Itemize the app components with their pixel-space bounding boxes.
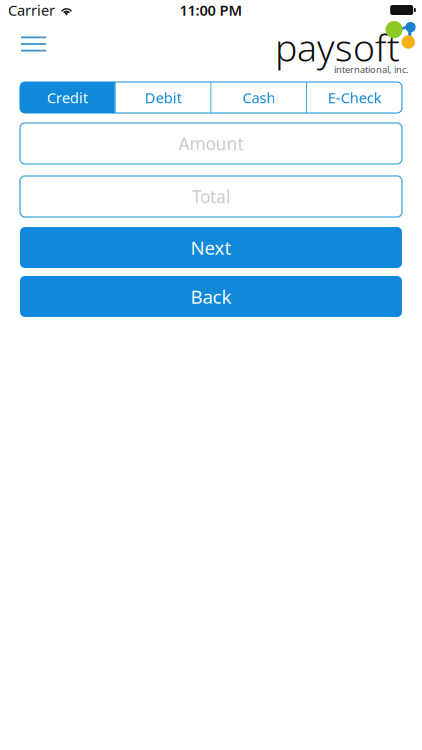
staticText: Total xyxy=(192,185,230,208)
button[interactable]: Back xyxy=(0,276,422,317)
button[interactable]: Total xyxy=(0,176,422,217)
button[interactable]: Menu xyxy=(11,22,56,66)
staticText: paysoft xyxy=(275,22,400,72)
staticText: Next xyxy=(190,235,231,260)
button[interactable]: Debit xyxy=(116,82,211,113)
button[interactable]: Cash xyxy=(211,82,306,113)
staticText: Carrier xyxy=(8,0,55,20)
staticText: 11:00 PM xyxy=(179,0,242,20)
staticText: Cash xyxy=(242,88,275,107)
staticText: international, inc. xyxy=(334,63,409,76)
staticText: E-Check xyxy=(328,88,382,107)
staticText: Credit xyxy=(47,88,88,107)
button[interactable]: E-Check xyxy=(307,82,402,113)
button[interactable]: Next xyxy=(0,227,422,268)
button[interactable]: Amount xyxy=(0,123,422,164)
button[interactable]: Credit xyxy=(20,82,115,113)
staticText: Back xyxy=(190,284,231,309)
staticText: Debit xyxy=(145,88,182,107)
staticText: Amount xyxy=(178,132,243,155)
